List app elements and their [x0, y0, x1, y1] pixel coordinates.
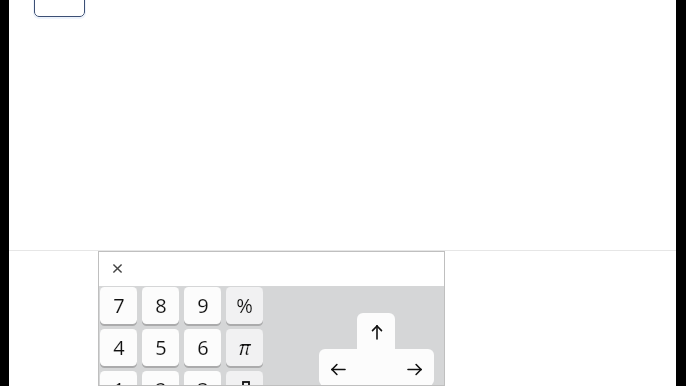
- button[interactable]: Move right: [377, 349, 434, 386]
- staticText: %: [236, 292, 253, 319]
- button[interactable]: 9: [184, 287, 221, 324]
- button[interactable]: Move up: [357, 313, 395, 351]
- button[interactable]: 8: [142, 287, 179, 324]
- staticText: 3: [197, 376, 209, 386]
- button[interactable]: 7: [100, 287, 137, 324]
- staticText: 4: [113, 334, 125, 361]
- button[interactable]: Answer input field: [34, 0, 85, 17]
- button[interactable]: 1: [100, 371, 137, 386]
- staticText: 8: [155, 292, 167, 319]
- button[interactable]: Close: [104, 256, 128, 280]
- button[interactable]: 3: [184, 371, 221, 386]
- staticText: 2: [155, 376, 167, 386]
- staticText: 5: [155, 334, 167, 361]
- button[interactable]: 2: [142, 371, 179, 386]
- button[interactable]: 5: [142, 329, 179, 366]
- staticText: 9: [197, 292, 209, 319]
- staticText: π: [238, 335, 251, 361]
- staticText: 6: [197, 334, 209, 361]
- button[interactable]: π: [226, 329, 263, 366]
- button[interactable]: 4: [100, 329, 137, 366]
- button[interactable]: Exponent: [226, 371, 263, 386]
- staticText: 1: [113, 376, 125, 386]
- button[interactable]: 6: [184, 329, 221, 366]
- button[interactable]: %: [226, 287, 263, 324]
- staticText: 7: [113, 292, 125, 319]
- button[interactable]: Move left: [319, 349, 376, 386]
